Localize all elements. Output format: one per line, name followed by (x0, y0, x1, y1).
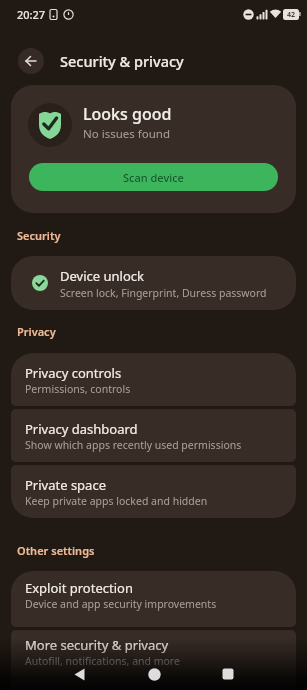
button[interactable]: Private space (11, 465, 296, 518)
staticText: Looks good (83, 103, 172, 125)
button[interactable] (18, 48, 44, 74)
button[interactable] (213, 659, 243, 689)
staticText: Show which apps recently used permission… (25, 438, 242, 452)
button[interactable] (64, 659, 94, 689)
staticText: Security (17, 228, 61, 243)
staticText: More security & privacy (25, 636, 169, 654)
staticText: Device and app security improvements (25, 597, 217, 611)
staticText: Permissions, controls (25, 382, 131, 396)
button[interactable]: Privacy dashboard (11, 409, 296, 462)
button[interactable]: Scan device (29, 163, 278, 191)
staticText: Privacy controls (25, 364, 122, 382)
staticText: Privacy (17, 324, 56, 339)
button[interactable]: Exploit protection (11, 571, 296, 627)
staticText: Keep private apps locked and hidden (25, 494, 208, 508)
button[interactable]: Device unlock (11, 256, 296, 310)
button[interactable]: Privacy controls (11, 353, 296, 406)
staticText: Exploit protection (25, 579, 133, 597)
button[interactable]: More security & privacy (11, 630, 296, 690)
staticText: Autofill, notifications, and more (25, 654, 180, 668)
staticText: Privacy dashboard (25, 420, 138, 438)
staticText: Other settings (17, 543, 95, 558)
staticText: 20:27 (17, 7, 46, 22)
staticText: 42 (287, 10, 296, 20)
staticText: Security & privacy (60, 51, 184, 71)
staticText: Scan device (123, 170, 184, 185)
staticText: No issues found (83, 126, 170, 142)
staticText: Screen lock, Fingerprint, Duress passwor… (60, 286, 267, 300)
staticText: Device unlock (60, 267, 144, 285)
staticText: Private space (25, 476, 106, 494)
button[interactable] (139, 659, 169, 689)
